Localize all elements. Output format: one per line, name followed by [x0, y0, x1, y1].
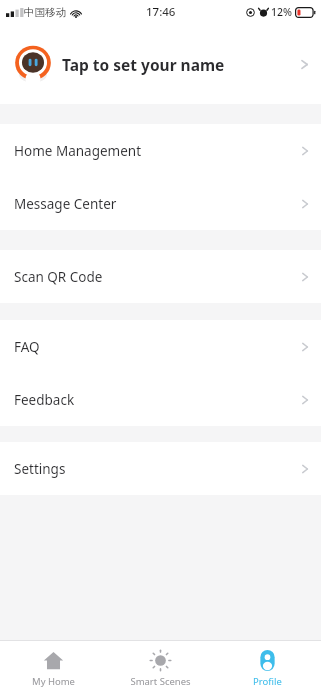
button[interactable]: Message Center	[0, 177, 321, 230]
staticText: My Home	[32, 675, 75, 688]
staticText: 17:46	[146, 4, 176, 20]
button[interactable]: Settings	[0, 442, 321, 495]
staticText: 12%	[271, 5, 292, 19]
staticText: Message Center	[14, 195, 117, 213]
button[interactable]: Scan QR Code	[0, 250, 321, 303]
button[interactable]: Feedback	[0, 373, 321, 426]
staticText: Tap to set your name	[62, 54, 225, 75]
staticText: Profile	[253, 675, 282, 688]
staticText: Scan QR Code	[14, 268, 103, 286]
button[interactable]: Home Management	[0, 124, 321, 177]
staticText: Home Management	[14, 142, 142, 160]
button[interactable]: Profile	[214, 641, 321, 696]
staticText: Smart Scenes	[130, 675, 191, 688]
staticText: Feedback	[14, 391, 75, 409]
button[interactable]: My Home	[0, 641, 107, 696]
button[interactable]: Smart Scenes	[107, 641, 214, 696]
button[interactable]: FAQ	[0, 320, 321, 373]
staticText: FAQ	[14, 338, 40, 356]
staticText: Settings	[14, 460, 66, 478]
staticText: 中国移动	[24, 6, 66, 19]
button[interactable]: Tap to set your name	[0, 24, 321, 104]
